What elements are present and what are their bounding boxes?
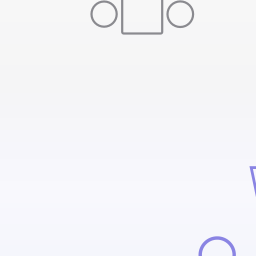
button[interactable]: Record: [200, 238, 234, 256]
button[interactable]: Stop: [122, 0, 162, 33]
button[interactable]: Next: [167, 1, 193, 27]
button[interactable]: Previous: [91, 1, 117, 27]
